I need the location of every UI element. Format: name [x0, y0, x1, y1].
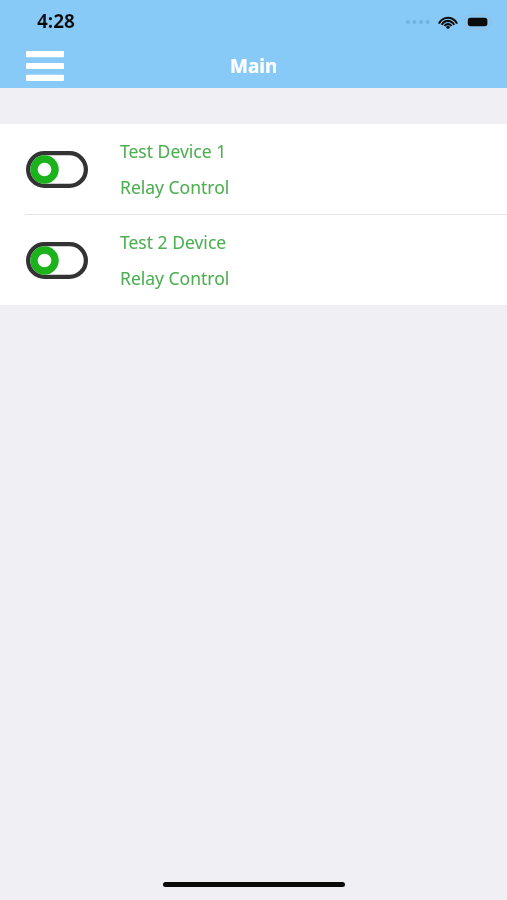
- button[interactable]: Relay toggle: [26, 242, 88, 279]
- staticText: Relay Control: [120, 266, 230, 290]
- button[interactable]: Menu: [18, 44, 72, 88]
- button[interactable]: Relay toggle: [0, 215, 507, 305]
- staticText: 4:28: [37, 8, 75, 34]
- button[interactable]: Relay toggle: [0, 124, 507, 214]
- staticText: Relay Control: [120, 175, 230, 199]
- staticText: Main: [230, 53, 278, 79]
- staticText: Test Device 1: [120, 139, 227, 163]
- staticText: Test 2 Device: [120, 230, 227, 254]
- button[interactable]: Relay toggle: [26, 151, 88, 188]
